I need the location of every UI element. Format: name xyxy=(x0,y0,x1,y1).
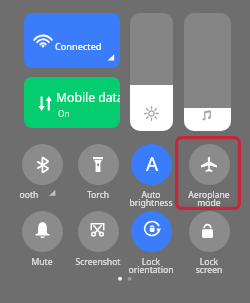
button[interactable]: Brightness xyxy=(130,13,173,131)
button[interactable]: Connected xyxy=(24,13,120,68)
button[interactable]: Lock screen xyxy=(189,211,230,252)
button[interactable]: Lock orientation xyxy=(131,211,172,252)
staticText: Auto brightness xyxy=(111,189,191,208)
staticText: Screenshot xyxy=(58,256,138,268)
staticText: Lock screen xyxy=(169,256,249,275)
staticText: ooth xyxy=(7,189,51,201)
button[interactable]: Auto brightness xyxy=(131,144,172,185)
staticText: Mute xyxy=(2,256,82,268)
staticText: Connected xyxy=(55,40,102,53)
staticText: A xyxy=(146,151,159,177)
button[interactable]: Media volume xyxy=(184,13,231,131)
button[interactable]: Screenshot xyxy=(78,211,119,252)
staticText: Aeroplane mode xyxy=(169,189,249,208)
staticText: On xyxy=(58,108,70,119)
staticText: Lock orientation xyxy=(111,256,191,275)
button[interactable]: Torch xyxy=(78,144,119,185)
button[interactable]: Mobile data xyxy=(24,77,120,128)
staticText: Torch xyxy=(58,189,138,201)
button[interactable]: Aeroplane mode xyxy=(189,144,230,185)
staticText: Mobile data xyxy=(56,89,120,106)
button[interactable]: Bluetooth xyxy=(22,144,63,185)
button[interactable]: Mute xyxy=(22,211,63,252)
